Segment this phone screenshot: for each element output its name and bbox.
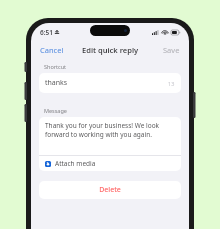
staticText: Thank you for your business! We look for…	[45, 121, 175, 139]
button[interactable]: Save	[154, 42, 189, 58]
staticText: Message	[44, 107, 67, 114]
staticText: Edit quick reply	[82, 45, 139, 55]
staticText: Shortcut	[44, 63, 67, 70]
staticText: Delete	[99, 185, 121, 195]
staticText: Attach media	[55, 159, 96, 168]
staticText: thanks	[45, 78, 68, 88]
staticText: 6:51	[40, 28, 53, 37]
staticText: Save	[163, 45, 180, 55]
button[interactable]: thanks	[39, 73, 181, 93]
button[interactable]: Delete	[39, 181, 181, 199]
staticText: Cancel	[40, 45, 64, 55]
button[interactable]: Attach media	[39, 156, 181, 171]
staticText: 13	[168, 80, 175, 87]
button[interactable]: Cancel	[31, 42, 73, 58]
other: Attach media	[45, 161, 51, 167]
